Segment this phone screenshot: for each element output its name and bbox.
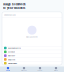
button[interactable]: Classes (16, 67, 32, 71)
button[interactable]: More (48, 67, 64, 71)
staticText: No classes yet (26, 36, 38, 38)
staticText: English (8, 58, 15, 61)
button[interactable]: Tasks (32, 67, 48, 71)
staticText: Tasks (37, 69, 42, 71)
staticText: to your students (3, 6, 25, 10)
staticText: More (54, 69, 58, 71)
button[interactable]: History (2, 54, 62, 57)
staticText: Science (8, 51, 15, 53)
staticText: Classes (21, 69, 27, 71)
staticText: Geography (8, 62, 17, 64)
button[interactable]: English (2, 58, 62, 61)
staticText: History (8, 54, 15, 57)
staticText: Choose a class (4, 13, 16, 16)
staticText: Home (6, 69, 10, 71)
staticText: Mathematics (8, 47, 21, 49)
button[interactable]: Science (2, 50, 62, 54)
button[interactable]: Mathematics (2, 46, 62, 50)
button[interactable]: Home (0, 67, 16, 71)
button[interactable]: Geography (2, 61, 62, 65)
staticText: Assign homework (3, 3, 26, 6)
